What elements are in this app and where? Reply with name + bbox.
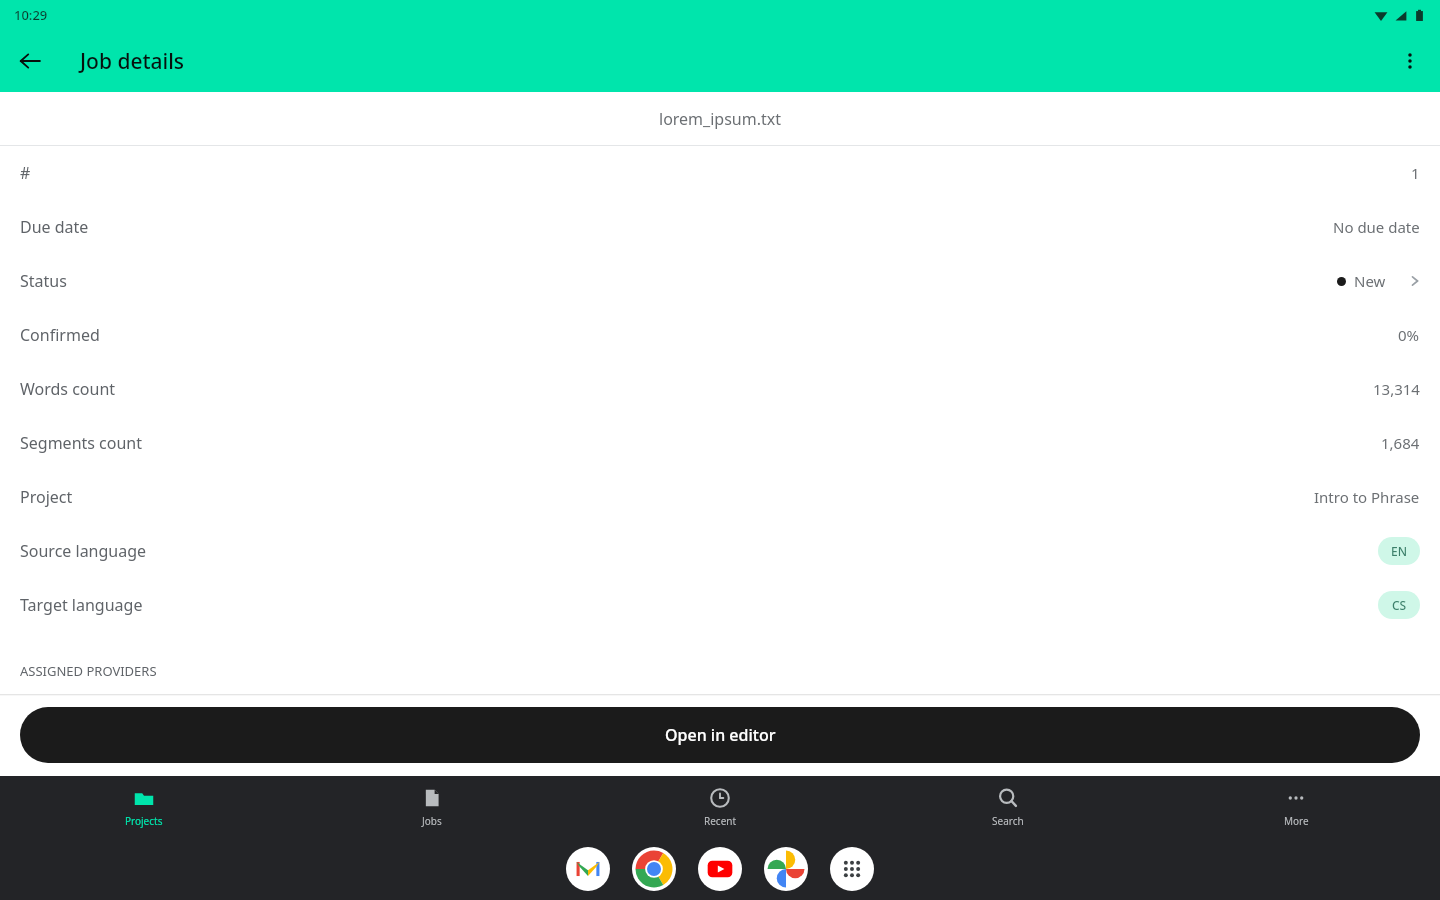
staticText: Search [992, 814, 1024, 828]
staticText: EN [1391, 543, 1407, 559]
staticText: New [1354, 271, 1386, 291]
staticText: 10:29 [14, 6, 48, 24]
staticText: Recent [704, 814, 737, 828]
staticText: ASSIGNED PROVIDERS [20, 662, 157, 680]
staticText: Words count [20, 378, 116, 400]
staticText: CS [1392, 597, 1407, 613]
staticText: 13,314 [1373, 379, 1420, 399]
staticText: 1 [1411, 163, 1420, 183]
button[interactable]: Search [864, 776, 1152, 838]
staticText: No due date [1333, 217, 1420, 237]
staticText: Project [20, 486, 73, 508]
button[interactable]: Recent [576, 776, 864, 838]
button[interactable]: Source language [0, 524, 1440, 578]
button[interactable]: Confirmed [0, 308, 1440, 362]
button[interactable]: All apps [830, 847, 874, 891]
button[interactable]: More options [1390, 41, 1430, 81]
button[interactable]: YouTube [698, 847, 742, 891]
button[interactable]: Status [0, 254, 1440, 308]
button[interactable]: Photos [764, 847, 808, 891]
staticText: Target language [20, 594, 143, 616]
button[interactable]: Gmail [566, 847, 610, 891]
button[interactable]: # [0, 146, 1440, 200]
staticText: Due date [20, 216, 89, 238]
staticText: 1,684 [1381, 433, 1420, 453]
staticText: # [20, 162, 31, 184]
button[interactable]: More [1152, 776, 1440, 838]
button[interactable]: Back [10, 41, 50, 81]
button[interactable]: Projects [0, 776, 288, 838]
button[interactable]: Chrome [632, 847, 676, 891]
staticText: Confirmed [20, 324, 100, 346]
staticText: lorem_ipsum.txt [659, 108, 781, 130]
button[interactable]: Segments count [0, 416, 1440, 470]
button[interactable]: Target language [0, 578, 1440, 632]
staticText: Job details [80, 47, 185, 76]
button[interactable]: Words count [0, 362, 1440, 416]
staticText: Status [20, 270, 67, 292]
staticText: Jobs [422, 814, 442, 828]
button[interactable]: Jobs [288, 776, 576, 838]
button[interactable]: Due date [0, 200, 1440, 254]
button[interactable]: Project [0, 470, 1440, 524]
staticText: Projects [125, 814, 163, 828]
staticText: More [1284, 814, 1309, 828]
staticText: Open in editor [665, 724, 776, 746]
button[interactable]: Open in editor [20, 707, 1420, 763]
staticText: Segments count [20, 432, 143, 454]
staticText: Intro to Phrase [1314, 487, 1420, 507]
staticText: Source language [20, 540, 147, 562]
staticText: 0% [1398, 325, 1420, 345]
